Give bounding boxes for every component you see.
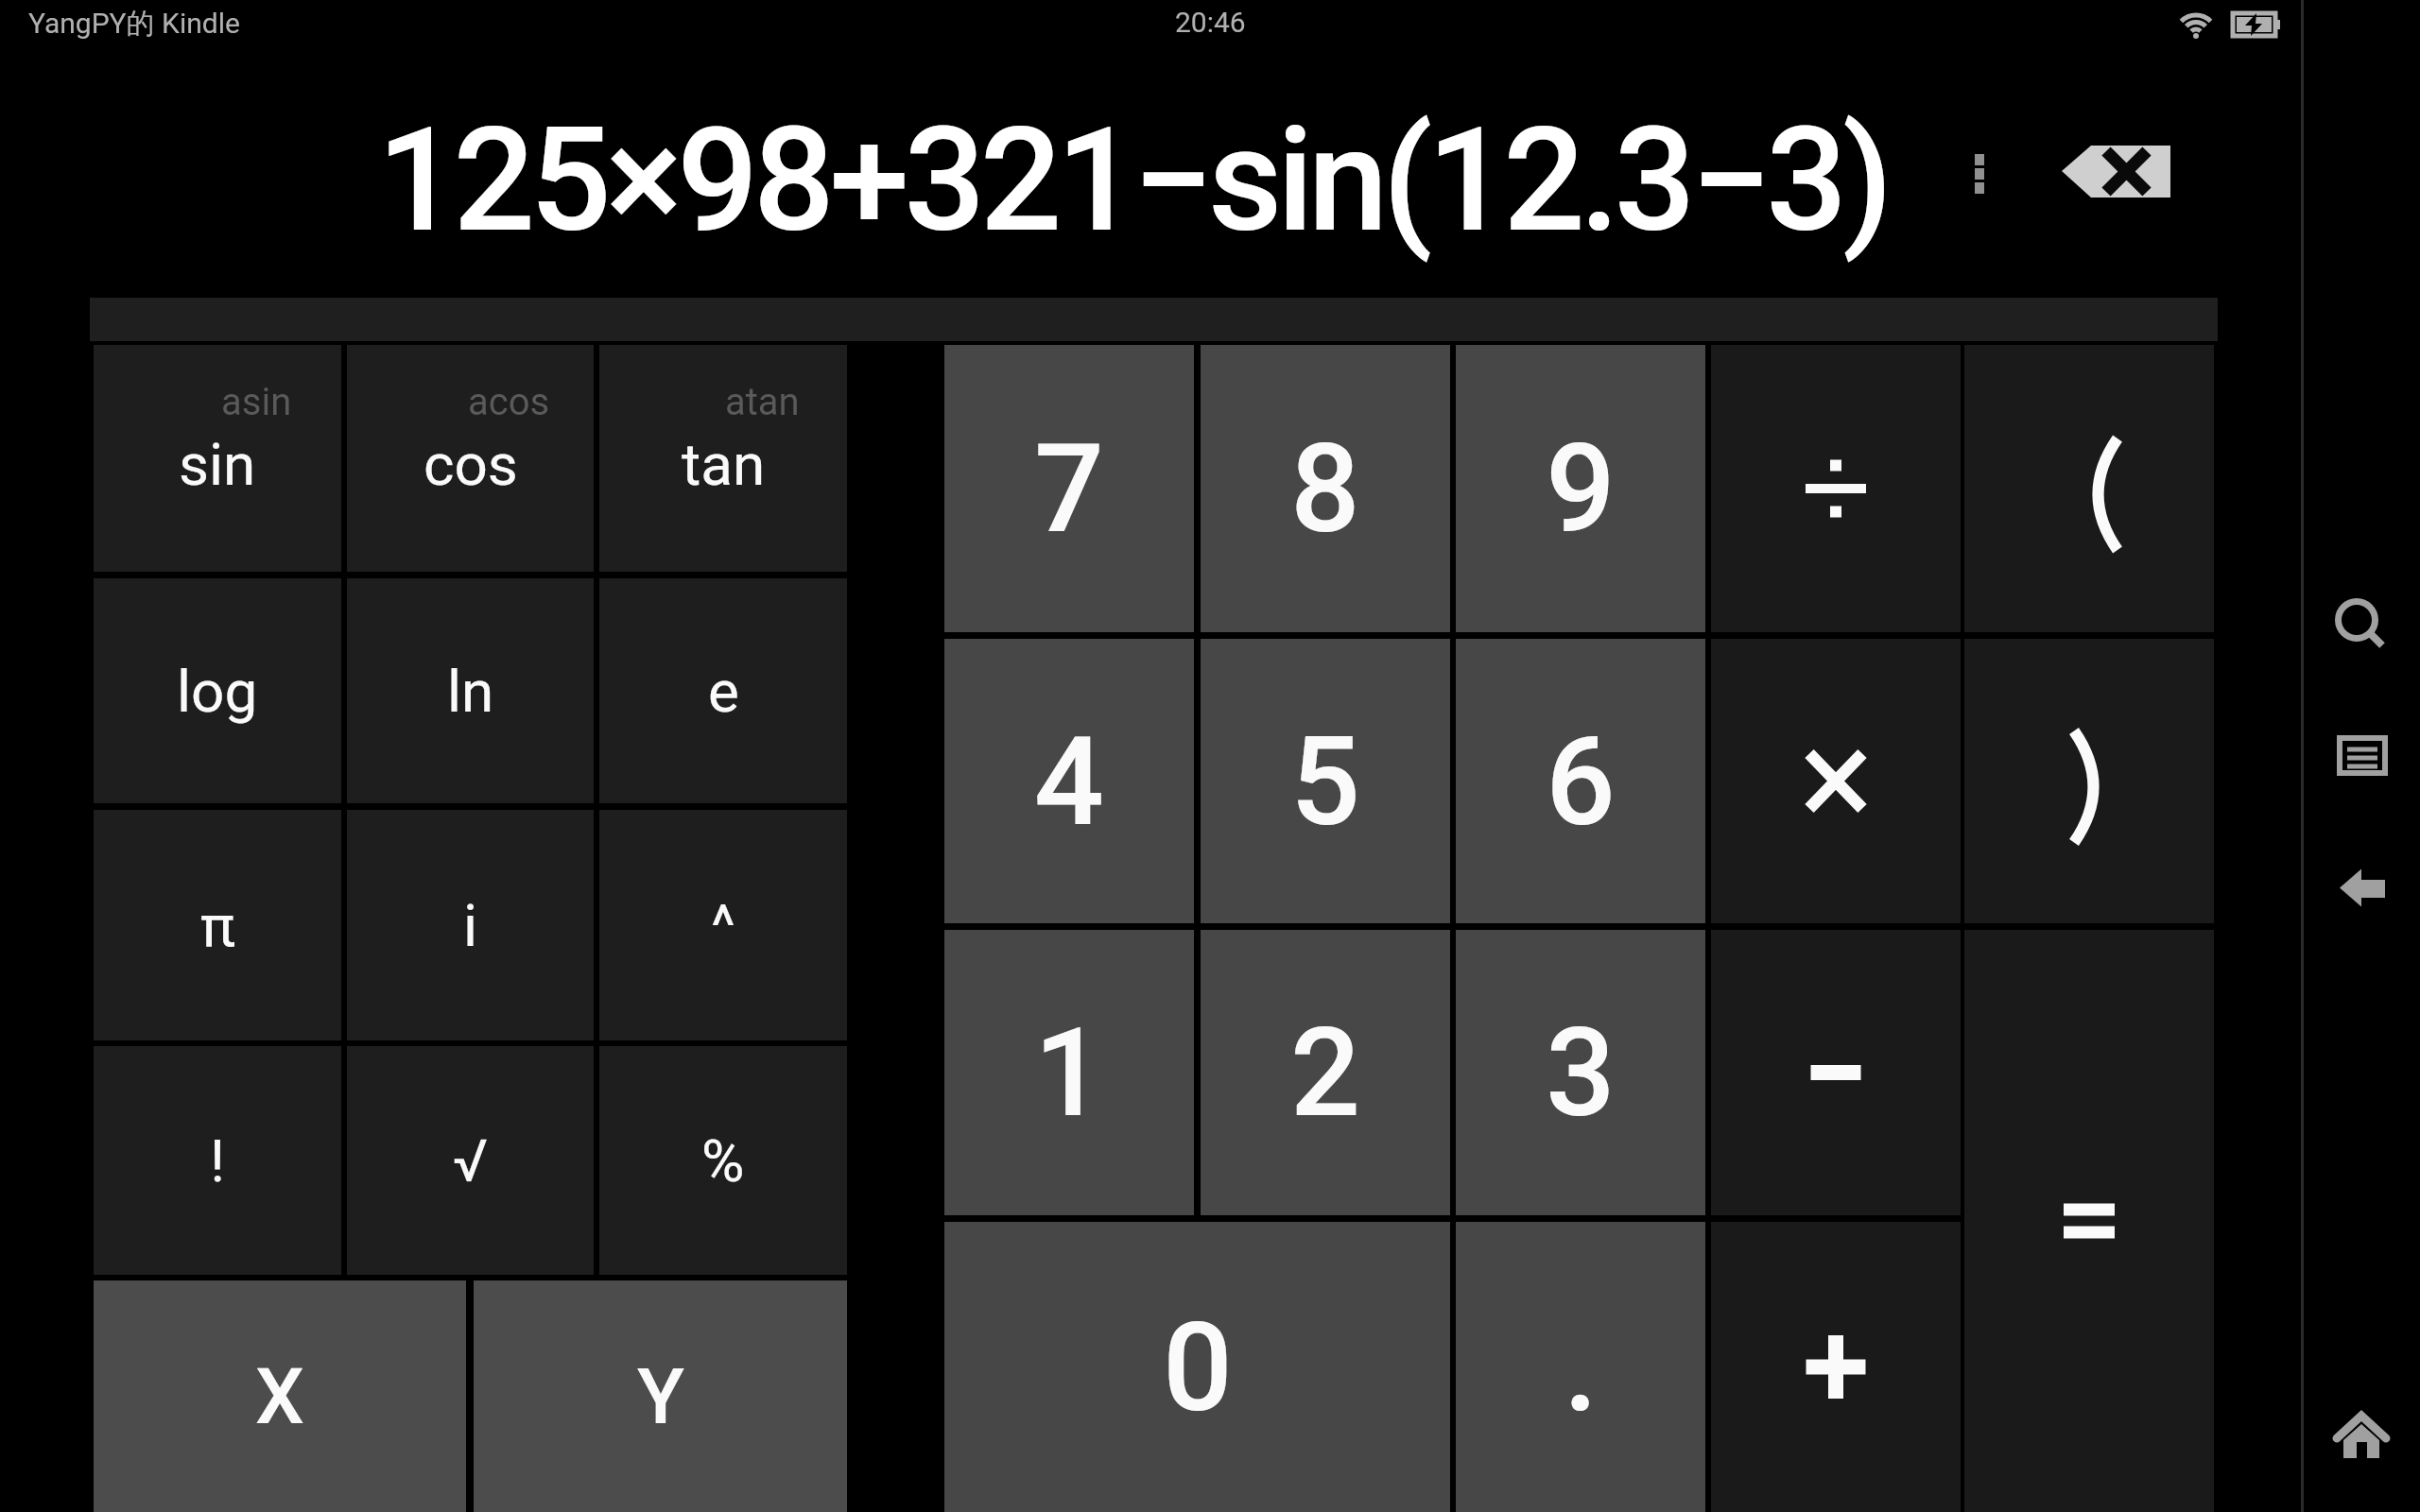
- button[interactable]: [2331, 1408, 2390, 1467]
- staticText: 3: [1546, 1001, 1616, 1144]
- staticText: cos: [423, 430, 518, 499]
- staticText: tan: [682, 430, 766, 499]
- button[interactable]: [1964, 930, 2214, 1512]
- staticText: X: [255, 1351, 304, 1442]
- button[interactable]: √: [347, 1046, 594, 1275]
- button[interactable]: [1966, 146, 1995, 198]
- button[interactable]: 3: [1456, 930, 1705, 1215]
- staticText: 2: [1290, 1001, 1360, 1144]
- button[interactable]: [2056, 140, 2179, 204]
- button[interactable]: X: [94, 1280, 466, 1512]
- button[interactable]: 8: [1201, 345, 1450, 632]
- button[interactable]: 1: [944, 930, 1194, 1215]
- staticText: 8: [1290, 417, 1360, 560]
- button[interactable]: [2331, 860, 2390, 917]
- button[interactable]: ^: [599, 810, 847, 1040]
- staticText: YangPY的 Kindle: [28, 6, 240, 42]
- button[interactable]: ln: [347, 578, 594, 803]
- staticText: 6: [1546, 710, 1616, 853]
- button[interactable]: e: [599, 578, 847, 803]
- button[interactable]: [1964, 639, 2214, 923]
- staticText: 125×98+321−sin(12.3−3): [377, 96, 1888, 265]
- button[interactable]: [1711, 1222, 1961, 1512]
- button[interactable]: [2330, 593, 2389, 652]
- staticText: √: [453, 1126, 488, 1195]
- staticText: ln: [447, 657, 494, 726]
- button[interactable]: [1711, 930, 1961, 1215]
- staticText: atan: [725, 380, 800, 424]
- staticText: %: [701, 1126, 745, 1195]
- staticText: 4: [1034, 710, 1104, 853]
- staticText: 7: [1034, 417, 1104, 560]
- button[interactable]: log: [94, 578, 341, 803]
- button[interactable]: 6: [1456, 639, 1705, 923]
- button[interactable]: π: [94, 810, 341, 1040]
- staticText: log: [177, 657, 258, 726]
- staticText: Y: [637, 1351, 684, 1442]
- button[interactable]: cos: [347, 345, 594, 572]
- button[interactable]: [1964, 345, 2214, 632]
- button[interactable]: %: [599, 1046, 847, 1275]
- button[interactable]: [2334, 734, 2391, 778]
- staticText: 5: [1290, 710, 1360, 853]
- staticText: 0: [1163, 1296, 1233, 1439]
- staticText: ^: [711, 891, 735, 960]
- staticText: sin: [179, 430, 256, 499]
- staticText: .: [1564, 1296, 1599, 1439]
- staticText: 20:46: [1175, 6, 1246, 39]
- button[interactable]: !: [94, 1046, 341, 1275]
- button[interactable]: i: [347, 810, 594, 1040]
- button[interactable]: Y: [474, 1280, 847, 1512]
- button[interactable]: 2: [1201, 930, 1450, 1215]
- button[interactable]: 9: [1456, 345, 1705, 632]
- staticText: asin: [221, 380, 292, 424]
- staticText: !: [210, 1126, 225, 1195]
- staticText: e: [708, 657, 739, 726]
- staticText: i: [463, 891, 478, 960]
- button[interactable]: 125×98+321−sin(12.3−3): [0, 48, 2265, 313]
- button[interactable]: tan: [599, 345, 847, 572]
- button[interactable]: 7: [944, 345, 1194, 632]
- staticText: π: [200, 891, 235, 960]
- staticText: 9: [1546, 417, 1616, 560]
- staticText: acos: [468, 380, 550, 424]
- staticText: 1: [1034, 1001, 1104, 1144]
- button[interactable]: 5: [1201, 639, 1450, 923]
- button[interactable]: 0: [944, 1222, 1450, 1512]
- button[interactable]: [1711, 345, 1961, 632]
- button[interactable]: .: [1456, 1222, 1705, 1512]
- button[interactable]: 4: [944, 639, 1194, 923]
- button[interactable]: sin: [94, 345, 341, 572]
- button[interactable]: [1711, 639, 1961, 923]
